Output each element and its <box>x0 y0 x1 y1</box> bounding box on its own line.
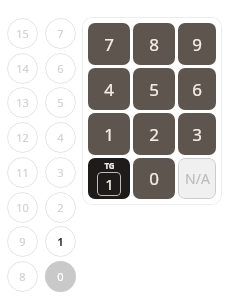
staticText: 8 <box>19 269 26 284</box>
staticText: 10 <box>16 200 29 215</box>
staticText: 13 <box>16 95 29 110</box>
button[interactable]: 9 <box>7 226 38 257</box>
button[interactable]: 10 <box>7 192 38 223</box>
button[interactable]: 6 <box>45 53 76 84</box>
staticText: TG <box>104 160 115 171</box>
staticText: 14 <box>16 61 29 76</box>
button[interactable]: 8 <box>133 23 175 65</box>
staticText: 5 <box>149 78 159 101</box>
staticText: 7 <box>104 33 114 56</box>
button[interactable]: 4 <box>45 122 76 153</box>
button[interactable]: 1 <box>88 113 130 155</box>
staticText: 12 <box>16 130 29 145</box>
staticText: 9 <box>192 33 202 56</box>
button[interactable]: 14 <box>7 53 38 84</box>
button[interactable]: N/A <box>178 158 216 199</box>
button[interactable]: 0 <box>133 158 175 199</box>
staticText: 6 <box>57 61 64 76</box>
staticText: 7 <box>57 26 64 41</box>
button[interactable]: Target group 1 <box>88 158 130 199</box>
staticText: 1 <box>104 123 114 146</box>
button[interactable]: 9 <box>178 23 216 65</box>
button[interactable]: 11 <box>7 157 38 188</box>
button[interactable]: 15 <box>7 18 38 49</box>
button[interactable]: 2 <box>133 113 175 155</box>
staticText: 1 <box>57 234 64 249</box>
staticText: 1 <box>105 174 114 194</box>
button[interactable]: 4 <box>88 68 130 110</box>
staticText: 2 <box>149 123 159 146</box>
button[interactable]: 1 <box>45 226 76 257</box>
staticText: 2 <box>57 200 64 215</box>
button[interactable]: 5 <box>45 87 76 118</box>
staticText: 8 <box>149 33 159 56</box>
staticText: 4 <box>104 78 114 101</box>
staticText: N/A <box>185 169 210 188</box>
button[interactable]: 13 <box>7 87 38 118</box>
staticText: 0 <box>57 269 64 284</box>
button[interactable]: 0 <box>45 261 76 292</box>
staticText: 6 <box>192 78 202 101</box>
staticText: 3 <box>192 123 202 146</box>
button[interactable]: 8 <box>7 261 38 292</box>
button[interactable]: 6 <box>178 68 216 110</box>
button[interactable]: 12 <box>7 122 38 153</box>
button[interactable]: 2 <box>45 192 76 223</box>
staticText: 0 <box>149 167 159 190</box>
staticText: 5 <box>57 95 64 110</box>
button[interactable]: 5 <box>133 68 175 110</box>
button[interactable]: 7 <box>88 23 130 65</box>
button[interactable]: 7 <box>45 18 76 49</box>
staticText: 9 <box>19 234 26 249</box>
staticText: 4 <box>57 130 64 145</box>
button[interactable]: 3 <box>45 157 76 188</box>
button[interactable]: 3 <box>178 113 216 155</box>
staticText: 15 <box>16 26 29 41</box>
staticText: 3 <box>57 165 64 180</box>
staticText: 11 <box>16 165 29 180</box>
